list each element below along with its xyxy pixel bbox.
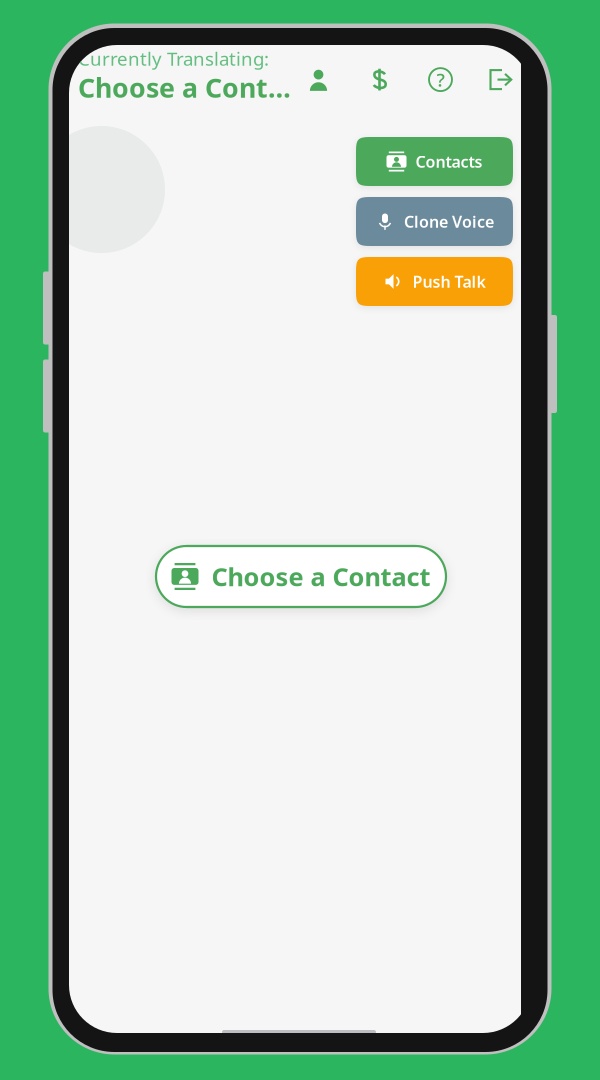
staticText: Push Talk [412, 271, 485, 292]
button[interactable]: Billing [367, 67, 392, 92]
button[interactable]: Sign out [488, 67, 513, 92]
staticText: Choose a Contact [211, 560, 430, 593]
button[interactable]: Push Talk [356, 257, 513, 306]
staticText: Clone Voice [404, 211, 494, 232]
button[interactable]: Choose a Contact [156, 546, 446, 607]
staticText: ? [436, 67, 444, 92]
button[interactable]: Account [306, 67, 331, 92]
button[interactable]: Clone Voice [356, 197, 513, 246]
button[interactable]: Contacts [356, 137, 513, 186]
button[interactable]: Help [428, 67, 453, 92]
staticText: Currently Translating: [78, 46, 269, 71]
staticText: Contacts [415, 151, 482, 172]
staticText: Choose a Cont… [78, 70, 291, 105]
